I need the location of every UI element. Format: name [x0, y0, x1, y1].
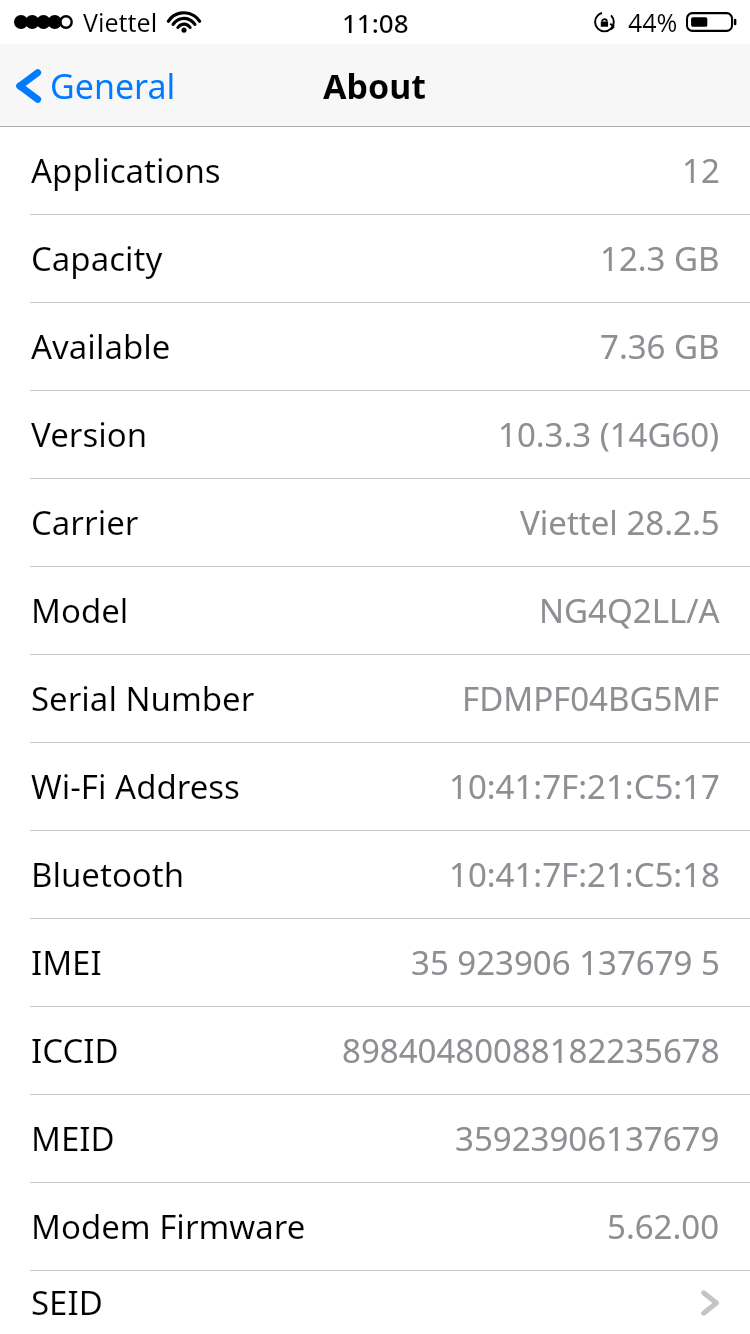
button[interactable]: Serial Number — [0, 655, 750, 742]
staticText: Viettel — [83, 5, 158, 39]
staticText: 89840480088182235678 — [342, 1028, 720, 1073]
button[interactable]: Carrier — [0, 479, 750, 566]
staticText: Wi-Fi Address — [31, 764, 240, 809]
staticText: ICCID — [31, 1028, 119, 1073]
staticText: IMEI — [31, 940, 102, 985]
button[interactable]: Wi-Fi Address — [0, 743, 750, 830]
button[interactable]: MEID — [0, 1095, 750, 1182]
staticText: 11:08 — [342, 5, 409, 40]
staticText: Applications — [31, 148, 221, 193]
staticText: NG4Q2LL/A — [539, 588, 720, 633]
button[interactable]: Bluetooth — [0, 831, 750, 918]
staticText: Capacity — [31, 236, 163, 281]
staticText: Viettel 28.2.5 — [520, 500, 720, 545]
staticText: Version — [31, 412, 148, 457]
staticText: 12 — [682, 148, 720, 193]
button[interactable]: Version — [0, 391, 750, 478]
button[interactable]: Available — [0, 303, 750, 390]
staticText: 12.3 GB — [600, 236, 720, 281]
other: Rotation lock — [593, 9, 619, 35]
staticText: Available — [31, 324, 171, 369]
button[interactable]: Applications — [0, 127, 750, 214]
button[interactable]: SEID — [0, 1271, 750, 1334]
staticText: 35923906137679 — [455, 1116, 720, 1161]
staticText: Carrier — [31, 500, 139, 545]
button[interactable]: IMEI — [0, 919, 750, 1006]
other: Battery 44 percent — [686, 10, 736, 34]
staticText: 10:41:7F:21:C5:18 — [449, 852, 720, 897]
staticText: 10:41:7F:21:C5:17 — [449, 764, 720, 809]
staticText: 10.3.3 (14G60) — [498, 412, 720, 457]
staticText: 5.62.00 — [607, 1204, 720, 1249]
staticText: 7.36 GB — [600, 324, 720, 369]
staticText: Bluetooth — [31, 852, 185, 897]
staticText: General — [50, 63, 176, 109]
button[interactable]: ICCID — [0, 1007, 750, 1094]
staticText: 44% — [628, 5, 678, 39]
button[interactable]: General — [0, 51, 192, 121]
button[interactable]: Model — [0, 567, 750, 654]
staticText: About — [323, 63, 427, 109]
staticText: MEID — [31, 1116, 115, 1161]
staticText: 35 923906 137679 5 — [411, 940, 720, 985]
staticText: Serial Number — [31, 676, 255, 721]
staticText: Model — [31, 588, 129, 633]
staticText: FDMPF04BG5MF — [462, 676, 720, 721]
button[interactable]: Modem Firmware — [0, 1183, 750, 1270]
staticText: Modem Firmware — [31, 1204, 306, 1249]
staticText: SEID — [31, 1280, 103, 1325]
button[interactable]: Capacity — [0, 215, 750, 302]
